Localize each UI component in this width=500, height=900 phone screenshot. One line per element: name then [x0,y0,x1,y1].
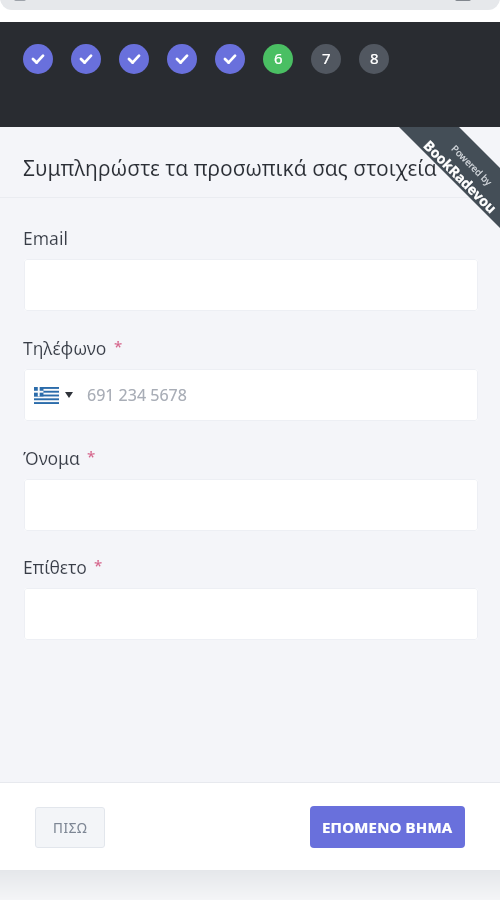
staticText: 8 [370,48,379,68]
staticText: Email [23,226,68,250]
staticText: Συμπληρώστε τα προσωπικά σας στοιχεία [23,154,437,183]
button[interactable]: Step 8 [359,44,389,74]
staticText: 6 [274,48,283,68]
button[interactable] [24,259,478,311]
button[interactable]: Completed step [215,44,245,74]
button[interactable]: ΕΠΟΜΕΝΟ ΒΗΜΑ [310,806,465,848]
staticText: Τηλέφωνο [23,336,107,360]
button[interactable] [24,479,478,531]
staticText: ΠΙΣΩ [53,819,88,837]
staticText: * [94,555,103,575]
button[interactable]: Completed step [167,44,197,74]
staticText: BookRadevou [420,136,500,217]
button[interactable]: Completed step [71,44,101,74]
button[interactable]: Step 7 [311,44,341,74]
staticText: 7 [322,48,331,68]
staticText: * [87,446,96,466]
button[interactable]: Completed step [119,44,149,74]
button[interactable]: Completed step [23,44,53,74]
staticText: Επίθετο [23,555,87,579]
button[interactable]: ΠΙΣΩ [35,807,105,848]
staticText: ΕΠΟΜΕΝΟ ΒΗΜΑ [322,817,453,837]
staticText: * [114,336,123,356]
button[interactable]: Step 6 [263,44,293,74]
staticText: Όνομα [23,446,80,470]
staticText: 691 234 5678 [87,384,187,406]
button[interactable] [24,588,478,640]
button[interactable]: 691 234 5678 [24,369,478,421]
staticText: Powered by [449,142,495,189]
